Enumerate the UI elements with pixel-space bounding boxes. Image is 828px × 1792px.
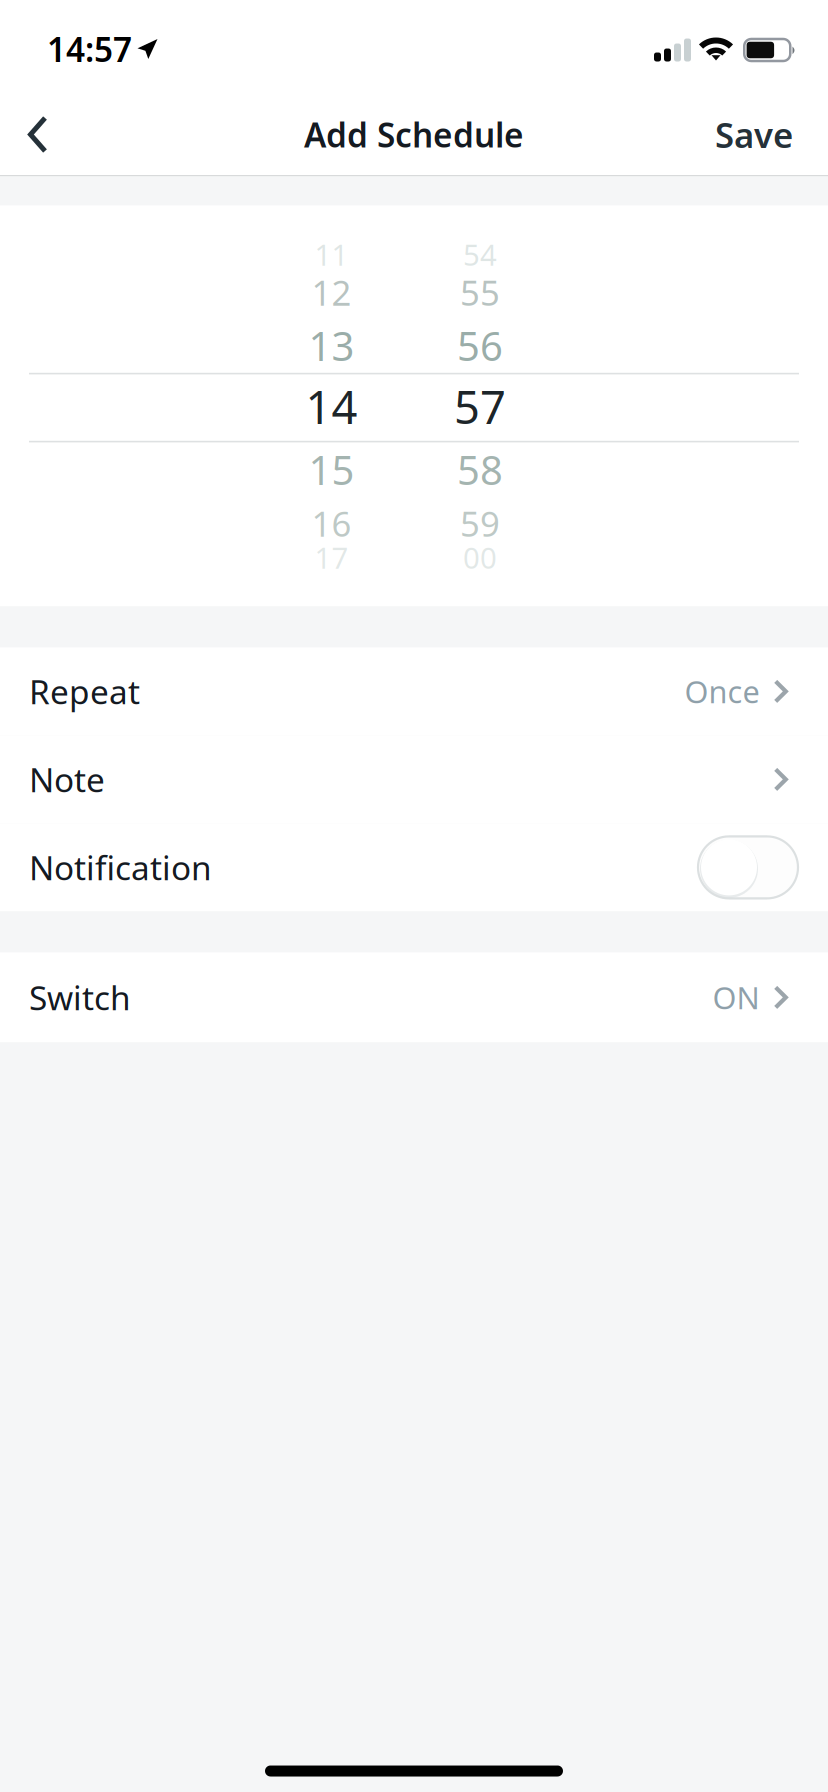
staticText: 54	[463, 235, 497, 274]
button[interactable]: Repeat	[0, 647, 828, 735]
staticText: 59	[460, 500, 500, 546]
staticText: ON	[712, 977, 759, 1018]
staticText: 17	[314, 538, 348, 577]
staticText: 57	[454, 376, 506, 436]
staticText: 00	[463, 538, 497, 577]
staticText: 15	[308, 443, 354, 496]
staticText: 14:57	[47, 27, 132, 71]
button[interactable]: Note	[0, 735, 828, 823]
button[interactable]: Back	[0, 94, 82, 174]
staticText: 12	[311, 269, 351, 315]
button[interactable]: Switch	[0, 952, 828, 1042]
staticText: 58	[457, 443, 503, 496]
staticText: Repeat	[29, 669, 140, 714]
button[interactable]: Save	[681, 90, 828, 178]
staticText: Switch	[29, 975, 131, 1020]
staticText: Add Schedule	[304, 112, 524, 157]
staticText: 13	[308, 319, 354, 372]
staticText: 14	[305, 376, 357, 436]
staticText: 55	[460, 269, 500, 315]
staticText: 56	[457, 319, 503, 372]
staticText: Save	[715, 111, 793, 157]
staticText: 16	[311, 500, 351, 546]
staticText: Once	[684, 671, 759, 712]
staticText: Notification	[29, 845, 212, 890]
staticText: Note	[29, 757, 105, 802]
button[interactable]: Notification	[0, 823, 828, 911]
staticText: 11	[314, 235, 348, 274]
